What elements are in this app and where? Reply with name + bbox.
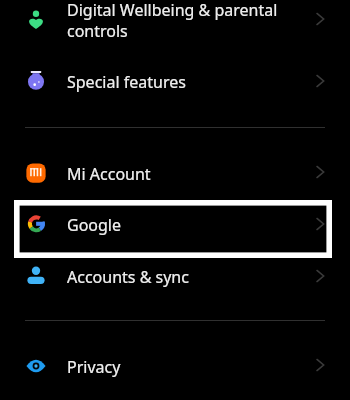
staticText: Google [67,214,122,236]
button[interactable]: Accounts & sync [0,251,350,303]
button[interactable]: Special features [0,55,350,107]
staticText: Mi Account [67,163,151,185]
button[interactable]: Privacy [0,340,350,392]
other: Open Accounts & sync [314,270,326,282]
other: Open Mi Account [314,166,326,178]
button[interactable]: Digital Wellbeing & parental controls [0,0,350,55]
staticText: Accounts & sync [67,266,189,288]
other: Open Special features [314,75,326,87]
other: Open Google [314,218,326,230]
button[interactable]: Google [0,199,350,251]
other: Open Privacy [314,359,326,371]
other: Open Digital Wellbeing & parental contro… [314,13,326,25]
staticText: Privacy [67,356,121,378]
button[interactable]: Mi Account [0,147,350,199]
staticText: Special features [67,71,186,93]
staticText: Digital Wellbeing & parental controls [67,0,282,42]
